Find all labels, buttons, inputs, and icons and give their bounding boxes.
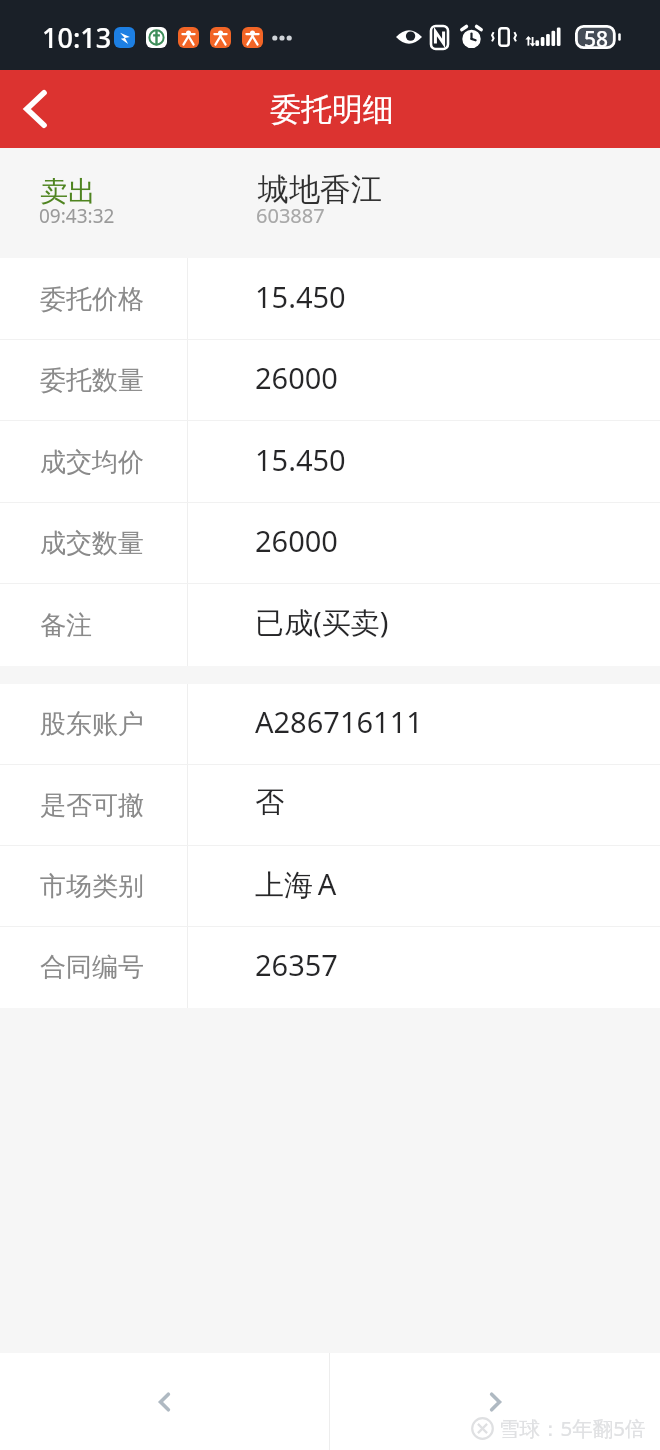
staticText: 股东账户 xyxy=(40,708,144,741)
staticText: 26357 xyxy=(255,945,338,984)
staticText: A286716111 xyxy=(255,702,423,741)
staticText: 已成(买卖) xyxy=(255,602,389,642)
staticText: 15.450 xyxy=(255,277,346,316)
button[interactable]: 成交数量 xyxy=(0,503,660,584)
staticText: 委托数量 xyxy=(40,364,144,397)
staticText: 备注 xyxy=(40,609,92,642)
staticText: 成交数量 xyxy=(40,527,144,560)
staticText: 市场类别 xyxy=(40,870,144,903)
button[interactable]: 委托价格 xyxy=(0,258,660,340)
staticText: 26000 xyxy=(255,358,338,397)
staticText: 委托价格 xyxy=(40,283,144,316)
staticText: 09:43:32 xyxy=(39,203,115,229)
button[interactable]: 备注 xyxy=(0,584,660,666)
staticText: 成交均价 xyxy=(40,446,144,479)
button[interactable]: 成交均价 xyxy=(0,421,660,503)
button[interactable]: 市场类别 xyxy=(0,846,660,927)
staticText: 26000 xyxy=(255,521,338,560)
button[interactable]: 是否可撤 xyxy=(0,765,660,846)
staticText: 城地香江 xyxy=(258,170,382,209)
button[interactable]: Next xyxy=(330,1353,660,1450)
button[interactable]: 卖出 xyxy=(0,148,660,258)
staticText: 15.450 xyxy=(255,440,346,479)
staticText: 58 xyxy=(584,25,609,49)
staticText: 合同编号 xyxy=(40,951,144,984)
staticText: 603887 xyxy=(256,202,325,229)
staticText: 雪球：5年翻5倍 xyxy=(499,1414,646,1442)
staticText: 上海 A xyxy=(255,864,337,904)
button[interactable]: 合同编号 xyxy=(0,927,660,1008)
staticText: 是否可撤 xyxy=(40,789,144,822)
staticText: 否 xyxy=(255,784,284,821)
button[interactable]: 委托数量 xyxy=(0,340,660,421)
button[interactable]: Back xyxy=(0,70,78,148)
staticText: 10:13 xyxy=(42,19,112,56)
button[interactable]: Previous xyxy=(0,1353,329,1450)
staticText: 委托明细 xyxy=(270,90,394,129)
button[interactable]: 股东账户 xyxy=(0,684,660,765)
staticText: 卖出 xyxy=(40,174,96,209)
